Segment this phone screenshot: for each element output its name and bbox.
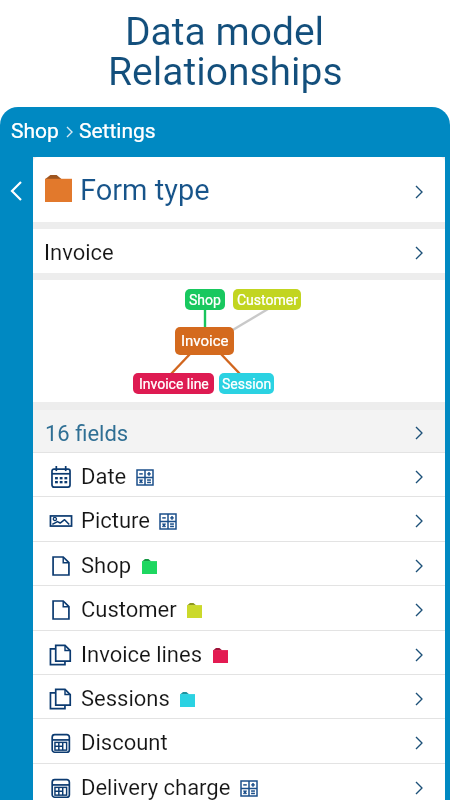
button[interactable]: Invoice	[33, 229, 445, 273]
button[interactable]: Sessions	[33, 675, 445, 718]
staticText: Form type	[80, 173, 210, 207]
staticText: Invoice line	[139, 376, 209, 392]
staticText: Delivery charge	[81, 775, 231, 800]
staticText: Shop	[189, 292, 221, 308]
staticText: 16 fields	[45, 421, 129, 447]
button[interactable]: Customer	[33, 586, 445, 630]
staticText: Customer	[237, 292, 298, 308]
button[interactable]: 16 fields	[33, 410, 445, 452]
button[interactable]: Invoice lines	[33, 631, 445, 674]
staticText: Invoice	[181, 332, 229, 350]
button[interactable]: Form type	[33, 157, 445, 222]
staticText: Session	[222, 376, 272, 392]
staticText: Shop	[11, 119, 59, 144]
staticText: Customer	[81, 597, 177, 623]
button[interactable]: Delivery charge	[33, 764, 445, 800]
staticText: Invoice	[44, 240, 114, 266]
staticText: Date	[81, 464, 127, 490]
staticText: Settings	[79, 119, 156, 144]
button[interactable]: Back	[1, 176, 31, 206]
button[interactable]: Discount	[33, 719, 445, 763]
staticText: Data model	[125, 9, 325, 55]
button[interactable]: Shop	[33, 542, 445, 585]
staticText: Invoice lines	[81, 642, 203, 668]
staticText: Sessions	[81, 686, 170, 712]
staticText: Shop	[81, 553, 132, 579]
staticText: Picture	[81, 508, 150, 534]
button[interactable]: Date	[33, 453, 445, 496]
button[interactable]: Picture	[33, 497, 445, 541]
staticText: Relationships	[108, 49, 343, 95]
staticText: Discount	[81, 730, 168, 756]
